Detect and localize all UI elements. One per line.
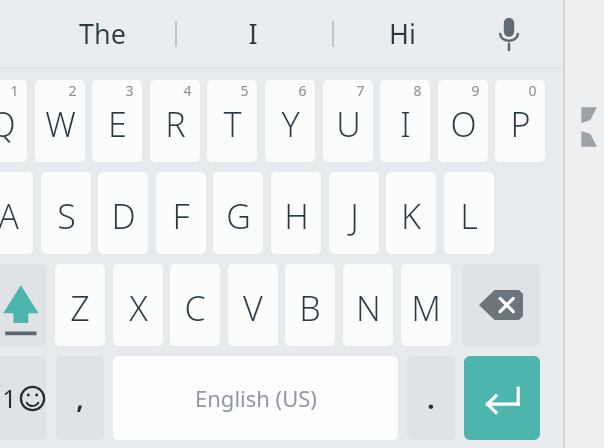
button[interactable]: Enter <box>464 356 540 440</box>
staticText: X <box>129 285 148 331</box>
button[interactable]: R <box>150 80 200 162</box>
staticText: Hi <box>389 15 416 52</box>
staticText: Q <box>0 101 16 147</box>
button[interactable]: B <box>285 264 335 346</box>
staticText: 4 <box>183 81 192 100</box>
button[interactable]: Symbols and emoji <box>0 356 46 440</box>
staticText: English (US) <box>195 383 317 413</box>
button[interactable]: T <box>207 80 257 162</box>
button[interactable]: Backspace <box>462 264 540 346</box>
button[interactable]: Voice input <box>478 8 540 60</box>
staticText: 1 <box>10 81 19 100</box>
button[interactable]: English (US) <box>113 356 398 440</box>
staticText: 8 <box>413 81 422 100</box>
button[interactable]: O <box>438 80 488 162</box>
button[interactable]: E <box>92 80 142 162</box>
button[interactable]: Q <box>0 80 27 162</box>
button[interactable]: Z <box>55 264 105 346</box>
staticText: M <box>411 285 441 331</box>
staticText: 5 <box>240 81 249 100</box>
button[interactable]: A <box>0 172 33 254</box>
button[interactable]: , <box>56 356 104 440</box>
staticText: 2 <box>68 81 77 100</box>
staticText: J <box>350 193 359 239</box>
button[interactable]: D <box>98 172 148 254</box>
button[interactable]: K <box>386 172 436 254</box>
staticText: , <box>76 381 84 416</box>
staticText: A <box>0 193 19 239</box>
button[interactable]: F <box>156 172 206 254</box>
button[interactable]: Caps lock <box>0 264 46 346</box>
staticText: H <box>284 193 309 239</box>
staticText: Z <box>70 285 90 331</box>
button[interactable]: V <box>228 264 278 346</box>
staticText: 7 <box>356 81 365 100</box>
button[interactable]: M <box>401 264 451 346</box>
staticText: 3 <box>125 81 134 100</box>
staticText: The <box>79 15 126 52</box>
staticText: . <box>427 381 435 416</box>
button[interactable]: Hi <box>340 0 465 67</box>
staticText: 1 <box>2 381 17 415</box>
staticText: W <box>45 101 76 147</box>
staticText: Y <box>281 101 300 147</box>
staticText: E <box>108 101 127 147</box>
staticText: T <box>223 101 242 147</box>
button[interactable]: Y <box>265 80 315 162</box>
button[interactable]: J <box>329 172 379 254</box>
staticText: R <box>165 101 186 147</box>
staticText: S <box>57 193 76 239</box>
staticText: O <box>450 101 477 147</box>
staticText: I <box>400 101 411 147</box>
button[interactable]: U <box>323 80 373 162</box>
button[interactable]: C <box>170 264 220 346</box>
button[interactable]: L <box>444 172 494 254</box>
button[interactable]: X <box>113 264 163 346</box>
button[interactable]: W <box>35 80 85 162</box>
staticText: I <box>248 15 258 52</box>
button[interactable]: H <box>271 172 321 254</box>
staticText: N <box>356 285 381 331</box>
staticText: 6 <box>298 81 307 100</box>
staticText: 9 <box>471 81 480 100</box>
button[interactable]: P <box>495 80 545 162</box>
staticText: B <box>299 285 321 331</box>
staticText: C <box>184 285 206 331</box>
button[interactable]: N <box>343 264 393 346</box>
staticText: F <box>172 193 190 239</box>
button[interactable]: . <box>407 356 455 440</box>
button[interactable]: Resize keyboard <box>576 103 604 151</box>
staticText: 0 <box>528 81 537 100</box>
staticText: D <box>111 193 136 239</box>
staticText: V <box>243 285 263 331</box>
button[interactable]: The <box>40 0 165 67</box>
button[interactable]: G <box>213 172 263 254</box>
staticText: U <box>336 101 361 147</box>
staticText: G <box>226 193 251 239</box>
staticText: K <box>401 193 421 239</box>
button[interactable]: I <box>380 80 430 162</box>
button[interactable]: S <box>41 172 91 254</box>
staticText: P <box>510 101 531 147</box>
staticText: L <box>460 193 478 239</box>
button[interactable]: I <box>190 0 315 67</box>
